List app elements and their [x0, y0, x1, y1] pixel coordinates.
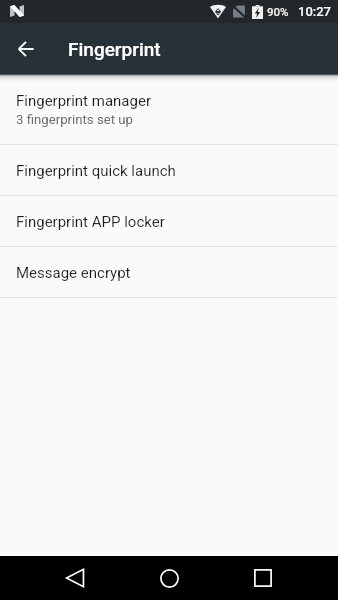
button[interactable]: Back [53, 556, 97, 600]
button[interactable]: Fingerprint quick launch [0, 145, 338, 195]
staticText: Fingerprint manager [16, 92, 151, 110]
staticText: Fingerprint APP locker [16, 213, 165, 231]
button[interactable]: Navigate up [10, 33, 42, 65]
staticText: 3 fingerprints set up [16, 112, 133, 127]
staticText: Fingerprint quick launch [16, 162, 176, 180]
button[interactable]: Home [147, 556, 191, 600]
button[interactable]: Recent apps [241, 556, 285, 600]
button[interactable]: Fingerprint APP locker [0, 196, 338, 246]
button[interactable]: Message encrypt [0, 247, 338, 297]
button[interactable]: Fingerprint manager [0, 74, 338, 144]
staticText: 90% [267, 5, 289, 18]
staticText: Fingerprint [68, 38, 161, 60]
staticText: 10:27 [298, 4, 331, 19]
staticText: Message encrypt [16, 264, 131, 282]
